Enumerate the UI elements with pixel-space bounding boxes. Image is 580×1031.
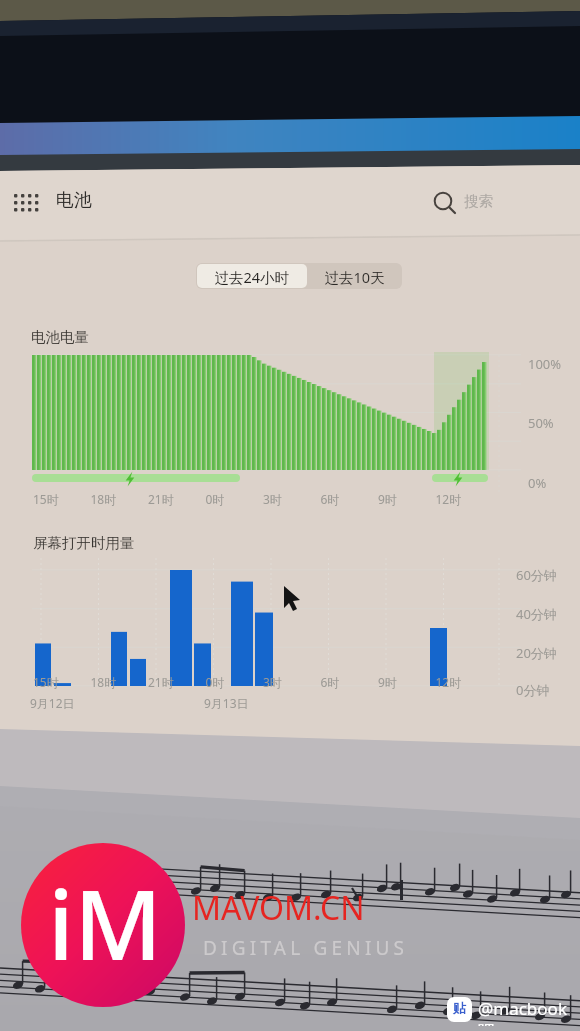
button[interactable] bbox=[54, 188, 104, 218]
button[interactable]: Search bbox=[430, 190, 508, 218]
button[interactable] bbox=[309, 264, 401, 288]
button[interactable] bbox=[197, 264, 307, 288]
button[interactable]: Apps bbox=[0, 0, 580, 1031]
button[interactable]: Tieba bbox=[447, 997, 472, 1022]
button[interactable]: Apps bbox=[12, 192, 42, 214]
